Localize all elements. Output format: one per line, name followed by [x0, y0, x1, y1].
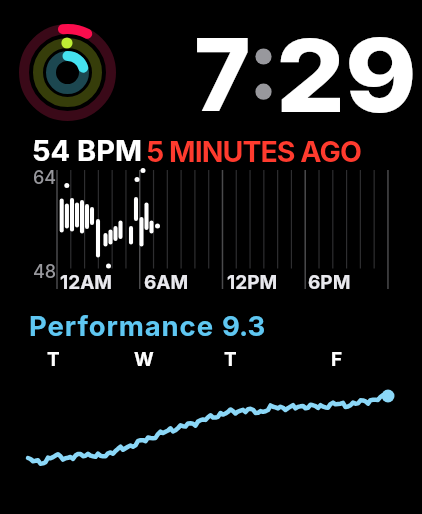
staticText: F: [331, 348, 343, 371]
button[interactable]: [25, 135, 415, 295]
staticText: 48: [33, 261, 57, 283]
staticText: 54 BPM: [32, 133, 143, 168]
staticText: W: [134, 348, 154, 371]
staticText: T: [224, 348, 237, 371]
staticText: T: [47, 348, 60, 371]
button[interactable]: [14, 19, 121, 126]
staticText: 9.3: [222, 309, 266, 342]
staticText: 12PM: [227, 271, 278, 294]
staticText: 7: [194, 13, 251, 135]
staticText: Performance: [29, 309, 214, 342]
staticText: 64: [33, 167, 57, 189]
button[interactable]: [25, 310, 415, 480]
staticText: 6PM: [308, 271, 351, 294]
staticText: 29: [276, 14, 418, 136]
staticText: 5 MINUTES AGO: [146, 134, 361, 168]
staticText: 12AM: [60, 271, 113, 294]
staticText: 6AM: [144, 271, 189, 294]
